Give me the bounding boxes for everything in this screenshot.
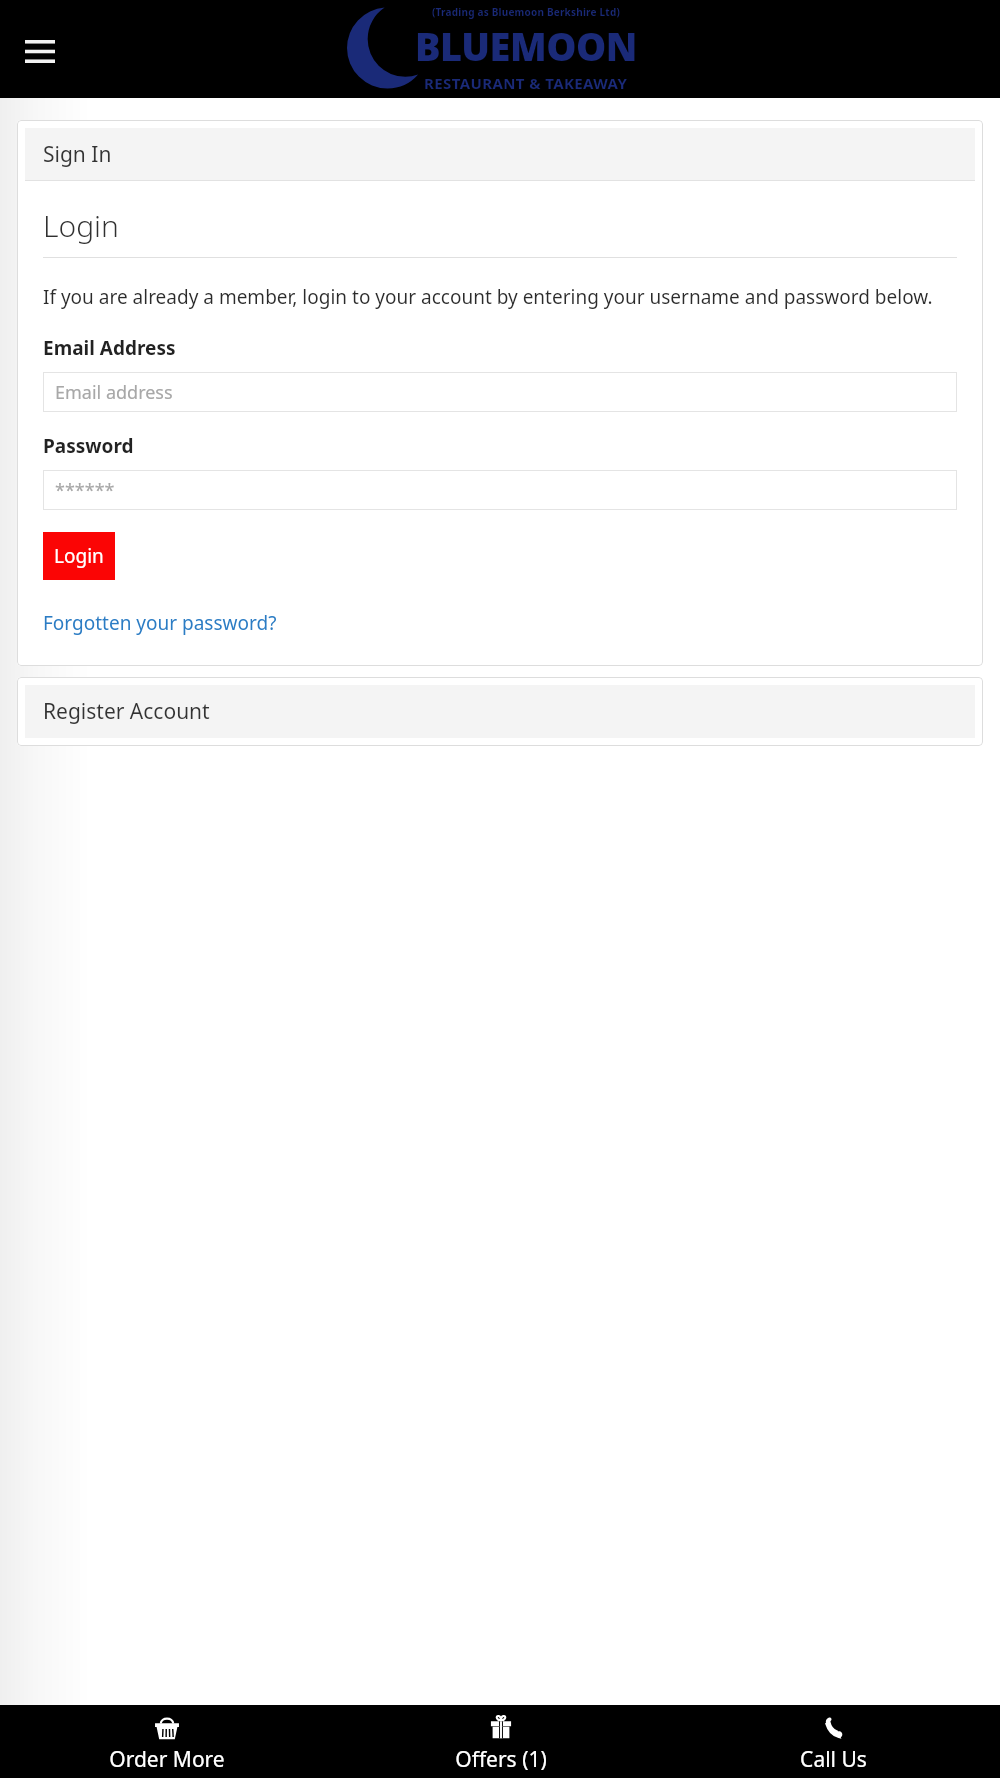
staticText: If you are already a member, login to yo… [43,284,933,310]
staticText: ****** [55,478,115,503]
button[interactable]: Menu [12,23,68,79]
staticText: (Trading as Bluemoon Berkshire Ltd) [432,5,620,19]
button[interactable]: ****** [43,470,957,510]
other: Order More [154,1715,180,1740]
button[interactable]: Email address [43,372,957,412]
staticText: Login [43,205,119,246]
button[interactable]: Order More [0,1709,334,1774]
other: Offers [489,1715,513,1740]
button[interactable]: Login [43,532,115,580]
staticText: Register Account [43,697,210,726]
other: Call Us [822,1715,846,1740]
staticText: RESTAURANT & TAKEAWAY [424,73,628,93]
staticText: Email Address [43,335,176,361]
staticText: Call Us [800,1745,867,1774]
button[interactable]: Sign In [25,128,975,181]
staticText: Password [43,433,134,459]
staticText: Offers (1) [455,1745,547,1774]
button[interactable]: Call Us [667,1709,1000,1774]
button[interactable]: Offers [334,1709,667,1774]
staticText: Email address [55,380,173,405]
staticText: BLUEMOON [415,20,637,72]
staticText: Order More [109,1745,225,1774]
staticText: Forgotten your password? [43,610,277,636]
staticText: Login [54,543,104,569]
staticText: Sign In [43,140,112,169]
button[interactable]: Forgotten your password? [43,610,277,636]
button[interactable]: Register Account [25,685,975,738]
